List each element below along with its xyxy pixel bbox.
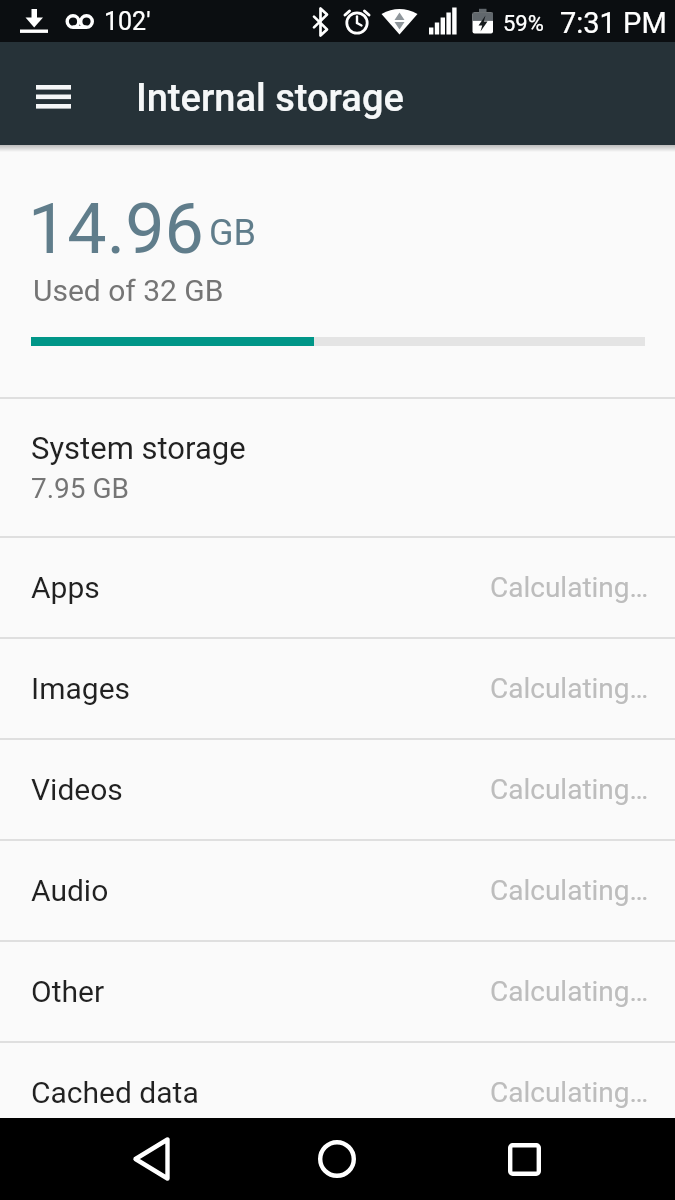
- staticText: Calculating…: [490, 773, 649, 806]
- button[interactable]: Apps: [0, 538, 675, 637]
- button[interactable]: [282, 1118, 392, 1200]
- staticText: Calculating…: [490, 874, 649, 907]
- button[interactable]: Images: [0, 639, 675, 738]
- staticText: Calculating…: [490, 672, 649, 705]
- staticText: Calculating…: [490, 975, 649, 1008]
- button[interactable]: System storage: [0, 399, 675, 536]
- button[interactable]: Audio: [0, 841, 675, 940]
- staticText: Videos: [31, 772, 123, 807]
- button[interactable]: Videos: [0, 740, 675, 839]
- staticText: 7:31 PM: [560, 6, 667, 40]
- button[interactable]: [469, 1118, 579, 1200]
- staticText: Internal storage: [136, 76, 404, 121]
- staticText: Calculating…: [490, 1076, 649, 1109]
- staticText: System storage: [31, 430, 246, 466]
- staticText: Apps: [31, 570, 100, 605]
- button[interactable]: Other: [0, 942, 675, 1041]
- staticText: Audio: [31, 873, 109, 908]
- staticText: Used of 32 GB: [33, 273, 224, 308]
- staticText: 59%: [503, 11, 544, 37]
- button[interactable]: [20, 64, 86, 130]
- staticText: Other: [31, 974, 105, 1009]
- staticText: 7.95 GB: [31, 472, 130, 505]
- staticText: Cached data: [31, 1075, 199, 1110]
- staticText: 102': [104, 7, 151, 36]
- button[interactable]: [96, 1118, 206, 1200]
- staticText: 14.96: [28, 188, 204, 270]
- staticText: Calculating…: [490, 571, 649, 604]
- staticText: Images: [31, 671, 131, 706]
- button[interactable]: Cached data: [0, 1043, 675, 1142]
- staticText: GB: [209, 212, 256, 254]
